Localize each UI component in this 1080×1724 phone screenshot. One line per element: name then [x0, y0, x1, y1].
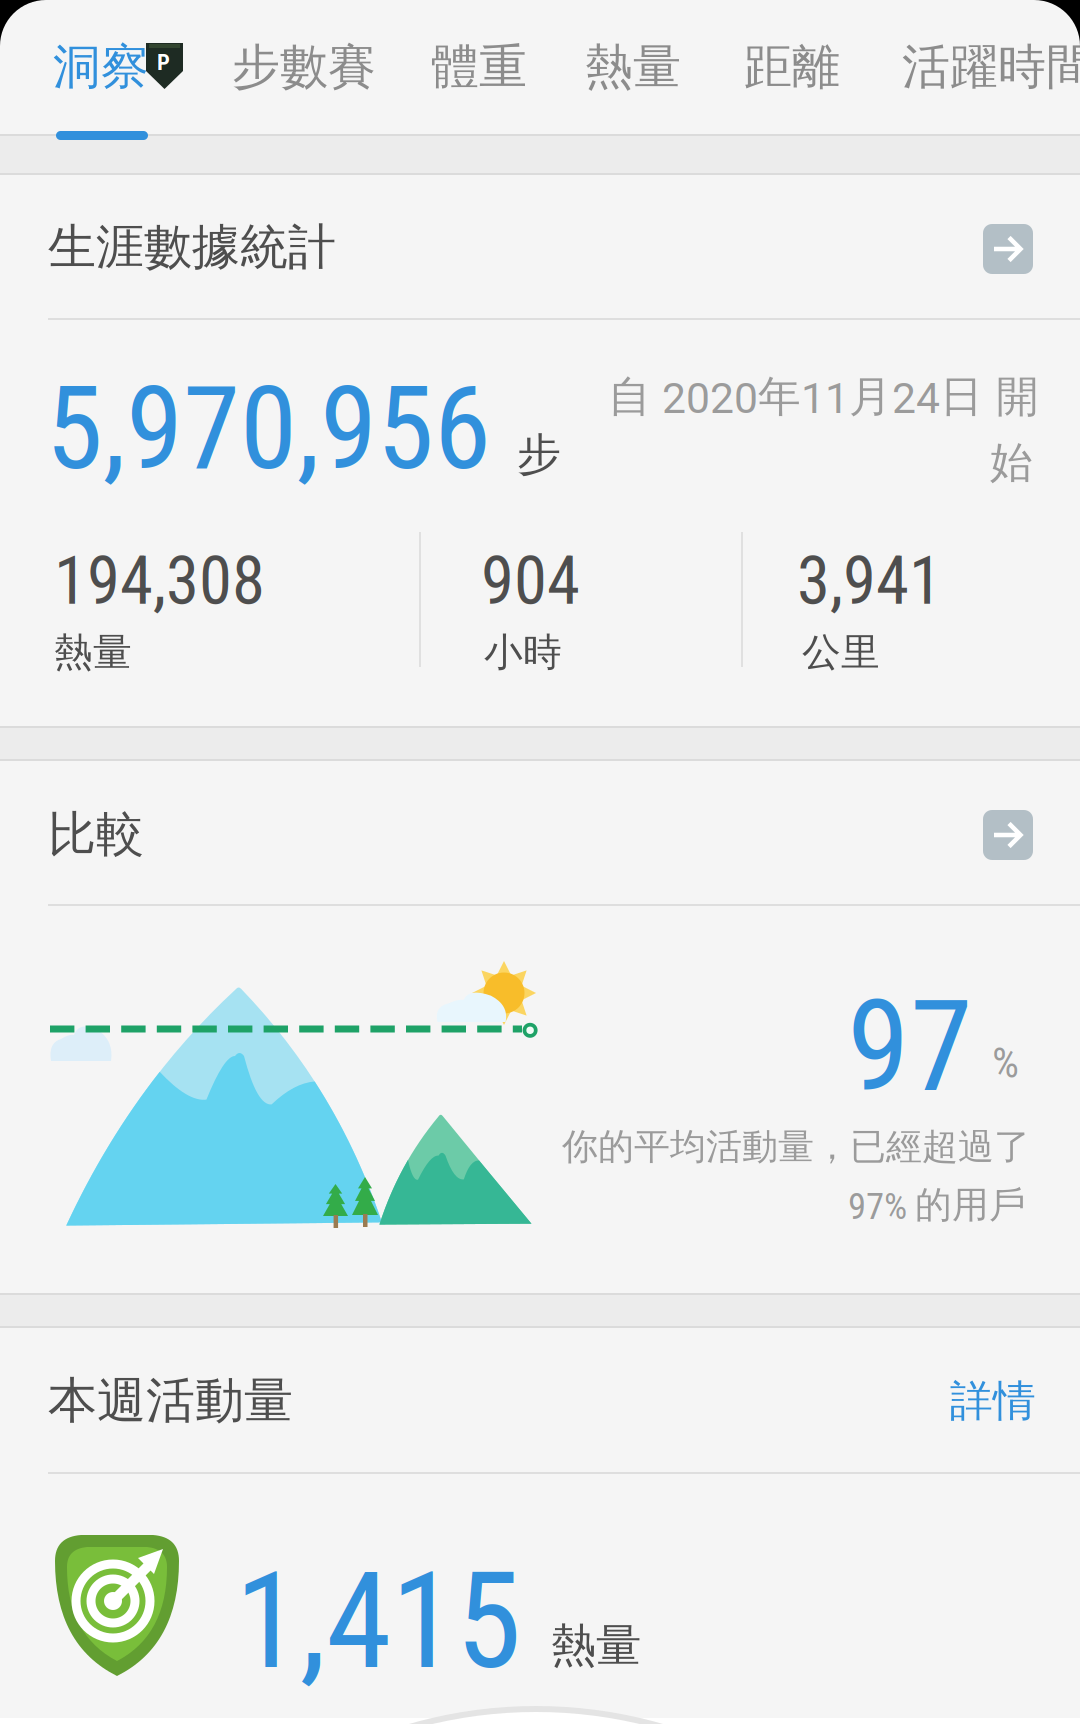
staticText: 洞察	[53, 37, 149, 97]
staticText: 1,415	[235, 1544, 521, 1699]
button[interactable]: 洞察	[53, 0, 183, 134]
staticText: 本週活動量	[48, 1370, 293, 1432]
staticText: %	[992, 1038, 1019, 1088]
staticText: 詳情	[950, 1374, 1036, 1428]
staticText: 97% 的用戶	[848, 1182, 1026, 1228]
staticText: 熱量	[551, 1617, 641, 1674]
staticText: 步	[517, 427, 561, 482]
staticText: 3,941	[797, 542, 942, 620]
staticText: 距離	[744, 37, 840, 97]
staticText: 你的平均活動量，已經超過了	[562, 1124, 1030, 1169]
button[interactable]: 步數賽	[232, 0, 374, 134]
staticText: 小時	[484, 628, 562, 677]
staticText: 熱量	[585, 37, 681, 97]
button[interactable]: View details	[983, 810, 1033, 860]
staticText: 步數賽	[232, 37, 376, 97]
staticText: 97	[847, 972, 973, 1120]
staticText: 始	[990, 436, 1033, 490]
staticText: 904	[481, 542, 580, 620]
staticText: 熱量	[54, 628, 132, 677]
button[interactable]: 體重	[431, 0, 527, 134]
button[interactable]: View details	[983, 224, 1033, 274]
staticText: 5,970,956	[46, 361, 491, 496]
staticText: 比較	[48, 804, 144, 864]
staticText: 生涯數據統計	[48, 217, 336, 277]
button[interactable]: 距離	[744, 0, 840, 134]
button[interactable]: 活躍時間	[902, 0, 1080, 134]
button[interactable]: 熱量	[585, 0, 681, 134]
staticText: 公里	[802, 628, 880, 677]
staticText: P	[157, 49, 170, 76]
staticText: 活躍時間	[902, 37, 1080, 97]
button[interactable]: 詳情	[906, 1365, 1036, 1437]
staticText: 194,308	[54, 542, 265, 620]
staticText: 體重	[431, 37, 527, 97]
staticText: 自 2020年11月24日 開	[608, 370, 1039, 424]
